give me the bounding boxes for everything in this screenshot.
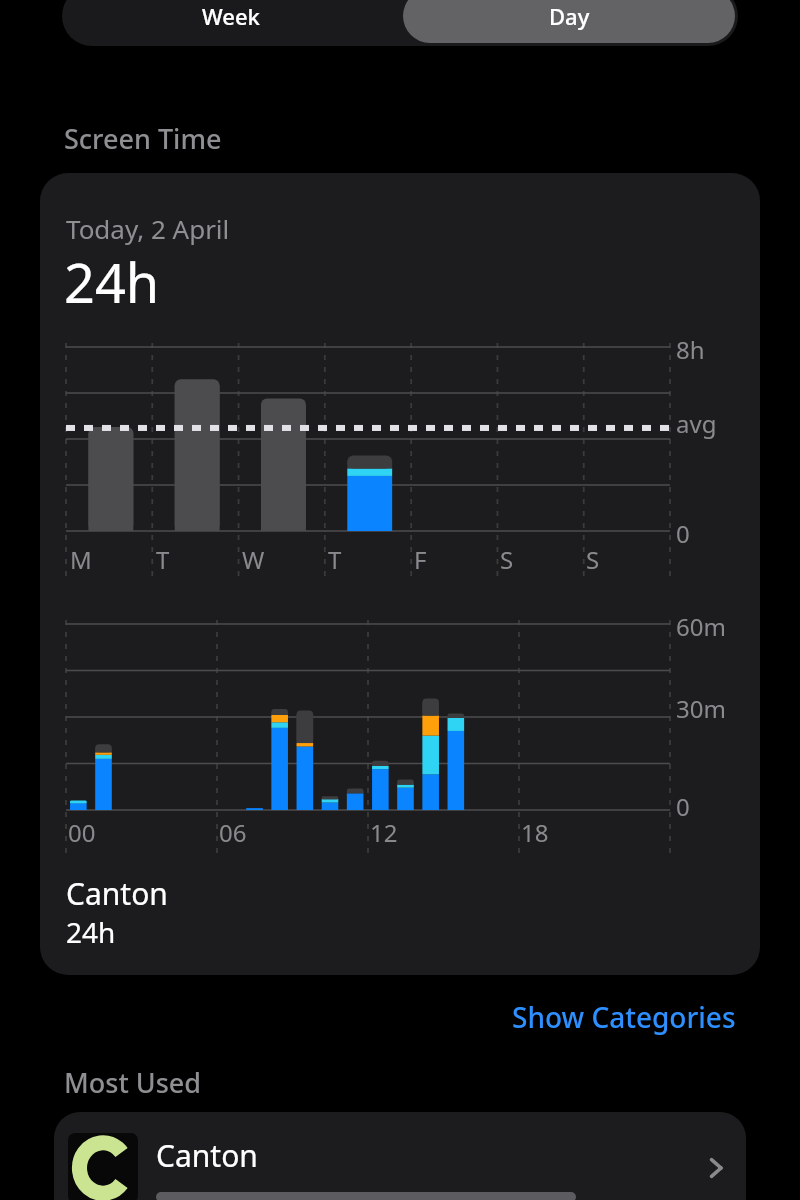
- staticText: Most Used: [64, 1064, 202, 1101]
- button[interactable]: Today, 2 April: [40, 173, 760, 975]
- staticText: T: [156, 543, 170, 576]
- staticText: W: [242, 543, 265, 576]
- button[interactable]: Day: [403, 0, 735, 43]
- staticText: 0: [676, 517, 690, 550]
- staticText: 12: [370, 816, 398, 849]
- staticText: Day: [549, 1, 590, 31]
- staticText: Canton: [156, 1135, 258, 1176]
- staticText: 24h: [66, 913, 116, 951]
- staticText: Show Categories: [512, 998, 736, 1036]
- other: Open Canton details: [686, 1112, 746, 1200]
- staticText: 8h: [676, 333, 705, 366]
- staticText: Screen Time: [64, 120, 222, 157]
- staticText: 24h: [64, 245, 160, 319]
- staticText: S: [500, 543, 514, 576]
- staticText: Canton: [66, 873, 168, 914]
- staticText: 06: [219, 816, 247, 849]
- staticText: M: [70, 543, 92, 576]
- staticText: Today, 2 April: [66, 211, 230, 246]
- staticText: F: [414, 543, 427, 576]
- staticText: T: [328, 543, 342, 576]
- staticText: 30m: [676, 692, 726, 725]
- staticText: S: [586, 543, 600, 576]
- button[interactable]: Show Categories: [506, 992, 742, 1042]
- staticText: 60m: [676, 610, 726, 643]
- staticText: 00: [68, 816, 96, 849]
- button[interactable]: Canton: [54, 1112, 746, 1200]
- staticText: 0: [676, 790, 690, 823]
- staticText: 18: [521, 816, 549, 849]
- staticText: avg: [676, 407, 717, 440]
- staticText: Week: [202, 1, 260, 31]
- button[interactable]: Week: [62, 0, 400, 46]
